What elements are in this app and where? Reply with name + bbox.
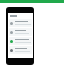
button[interactable] [9,37,32,45]
button[interactable] [9,19,32,27]
button[interactable] [9,28,32,36]
button[interactable] [9,46,32,54]
